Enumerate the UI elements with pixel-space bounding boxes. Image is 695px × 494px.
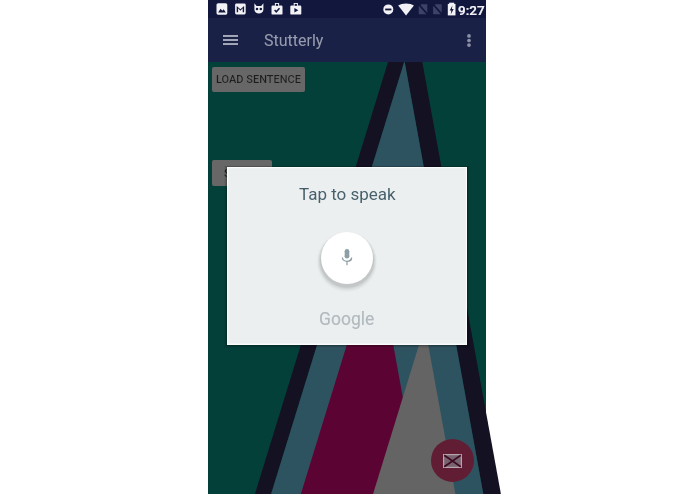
button[interactable]: Tap to speak — [227, 167, 467, 345]
button[interactable]: Open navigation drawer — [210, 20, 250, 60]
button[interactable]: More options — [449, 20, 489, 60]
button[interactable]: Speak — [321, 232, 373, 284]
staticText: Google — [319, 309, 375, 330]
staticText: SPEAK — [224, 167, 259, 180]
button[interactable]: LOAD SENTENCE — [212, 67, 305, 92]
button[interactable]: Compose message — [431, 439, 474, 482]
staticText: Tap to speak — [299, 184, 396, 204]
staticText: 9:27 — [458, 2, 485, 18]
staticText: LOAD SENTENCE — [216, 73, 301, 86]
staticText: Stutterly — [264, 31, 324, 50]
button[interactable]: SPEAK — [212, 160, 272, 186]
